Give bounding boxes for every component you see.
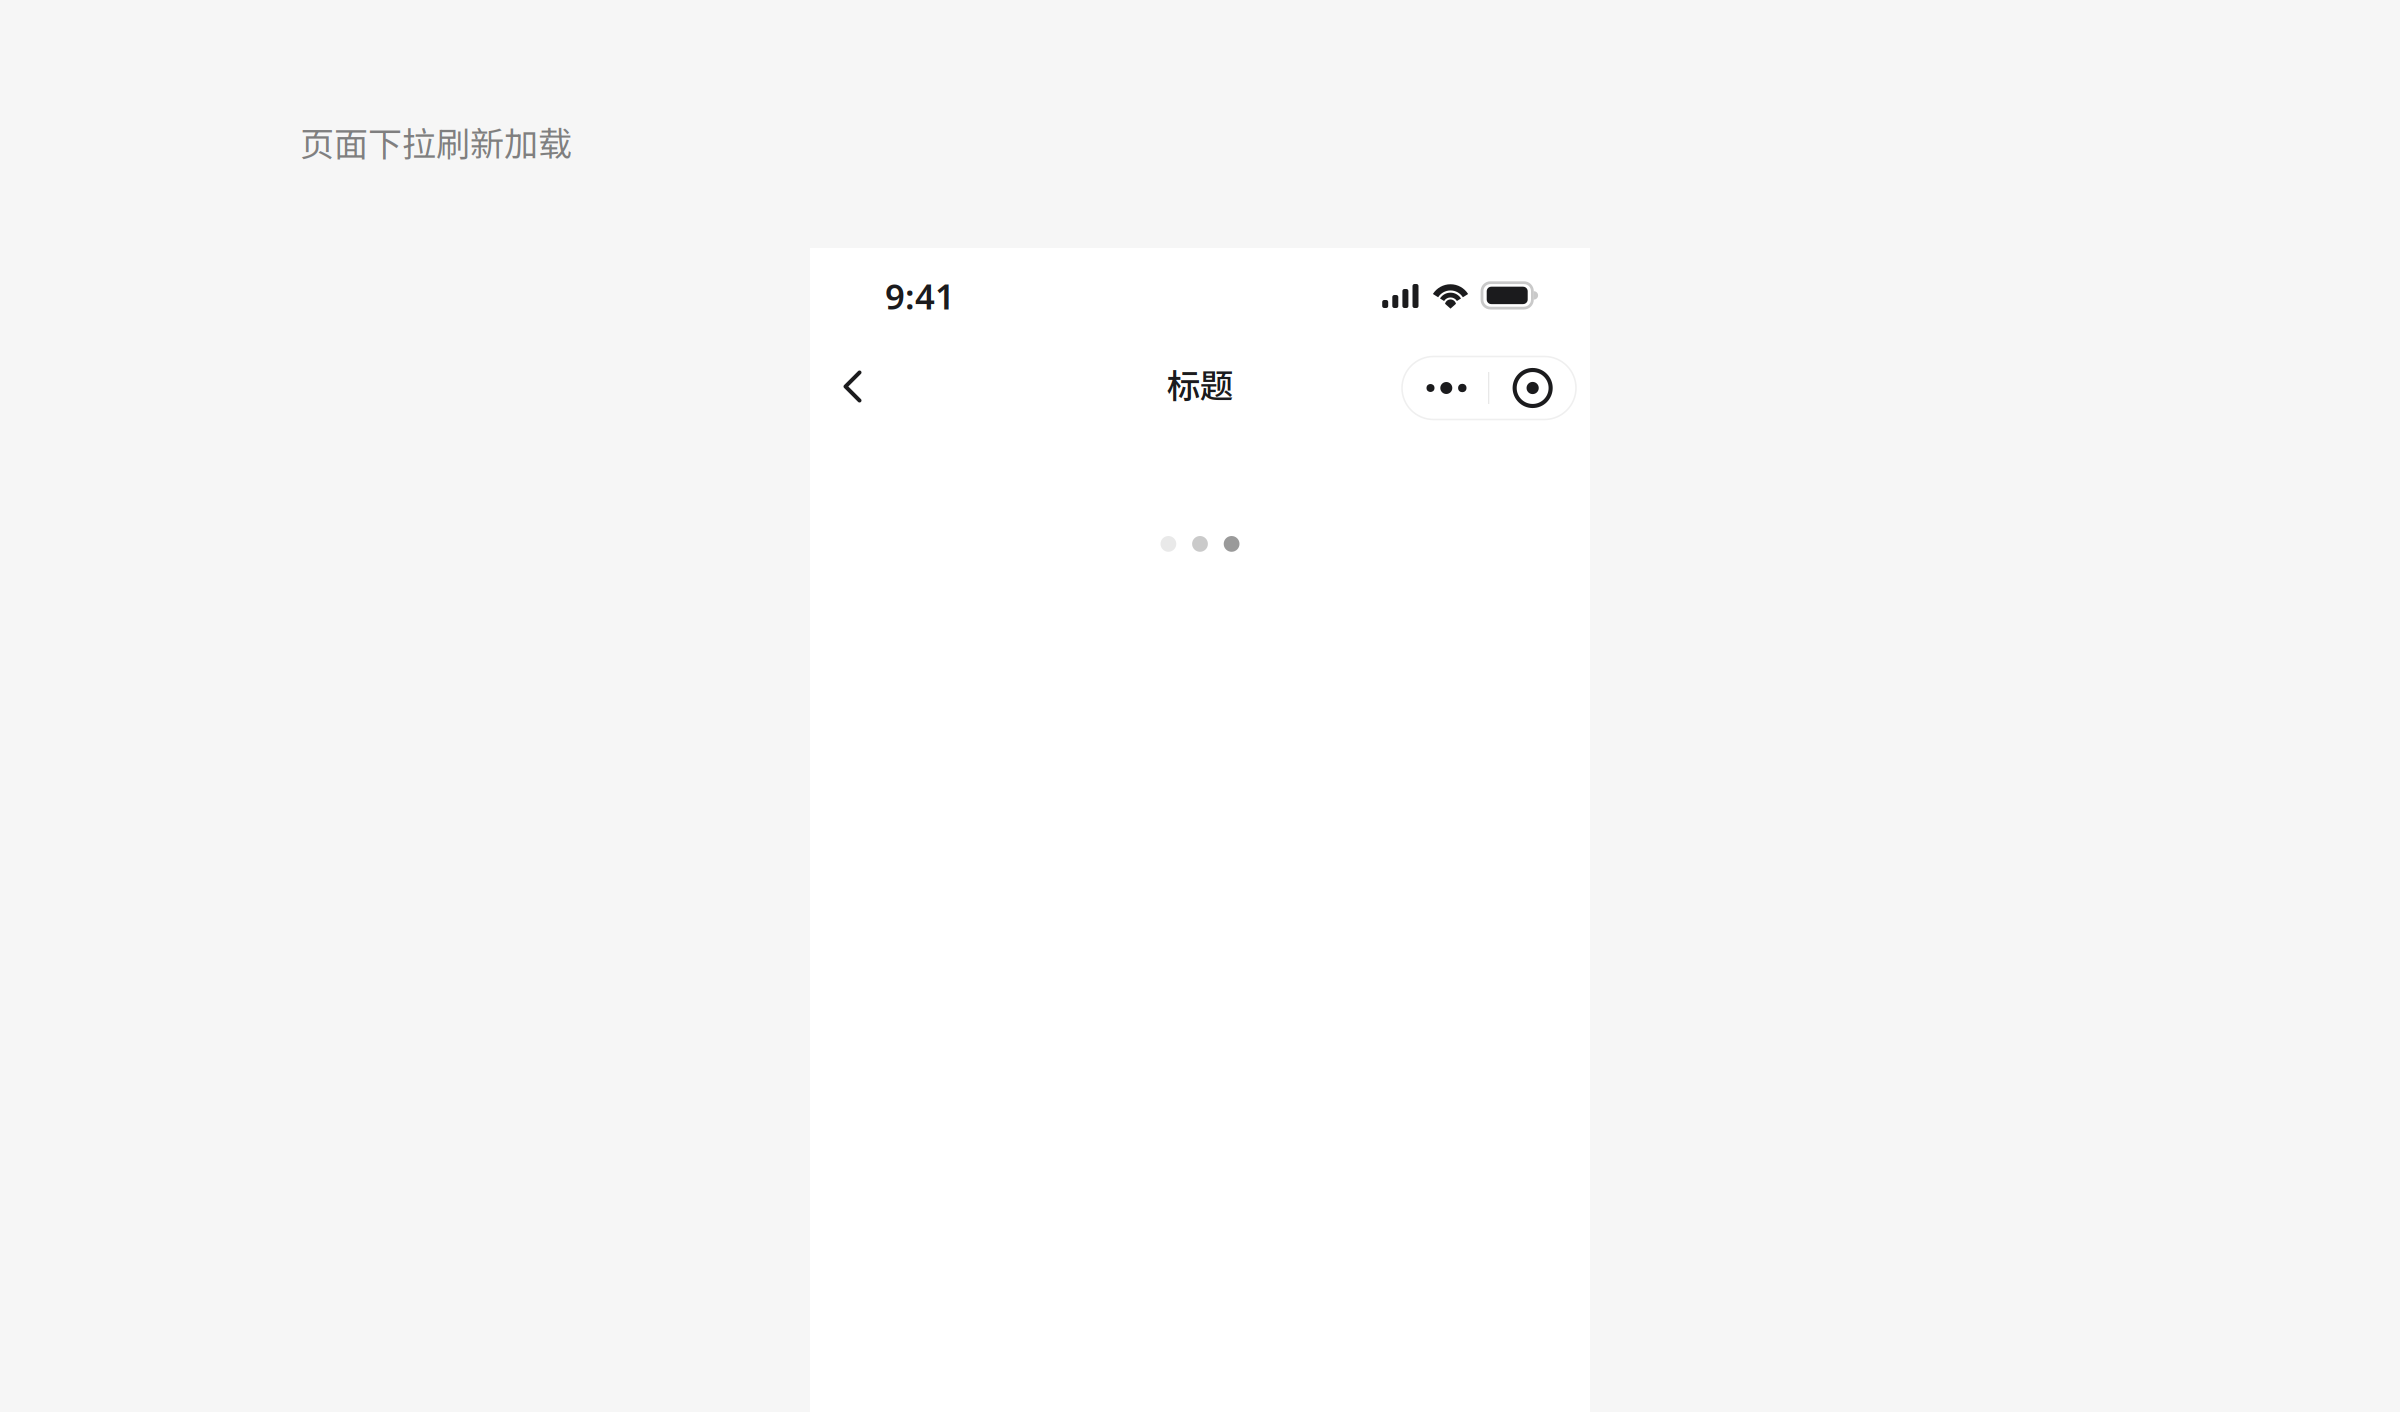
button[interactable]: More options and close mini program (1402, 356, 1576, 419)
button[interactable]: Back (818, 344, 890, 432)
staticText: 页面下拉刷新加载 (300, 117, 572, 166)
staticText: 标题 (1167, 359, 1233, 408)
staticText: 9:41 (885, 273, 955, 319)
